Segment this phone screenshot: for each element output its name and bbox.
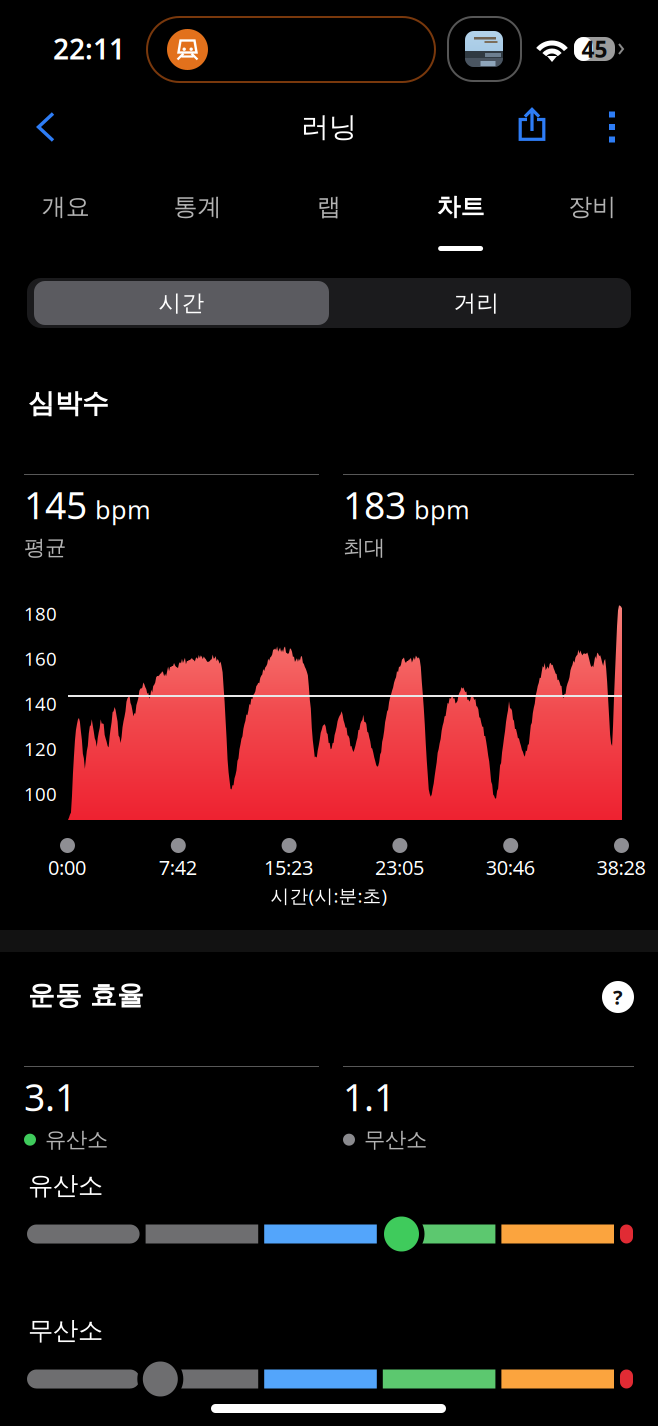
staticText: 45 — [581, 34, 607, 64]
staticText: 0:00 — [48, 854, 86, 881]
button[interactable]: Help — [591, 970, 645, 1024]
staticText: 통계 — [173, 192, 221, 221]
staticText: 심박수 — [28, 387, 109, 420]
button[interactable]: 개요 — [0, 166, 132, 258]
staticText: 7:42 — [159, 854, 197, 881]
staticText: 차트 — [437, 192, 485, 221]
staticText: 유산소 — [45, 1127, 108, 1153]
staticText: 22:11 — [53, 30, 125, 67]
staticText: 시간(시:분:초) — [270, 883, 387, 908]
staticText: 160 — [24, 646, 57, 671]
button[interactable]: Share — [497, 93, 567, 155]
staticText: 평균 — [24, 535, 66, 561]
staticText: 180 — [24, 601, 57, 626]
button[interactable]: 랩 — [263, 166, 395, 258]
staticText: 시간 — [158, 289, 204, 317]
staticText: 3.1 — [24, 1072, 76, 1122]
button[interactable]: 시간 — [34, 281, 329, 325]
staticText: 랩 — [317, 192, 341, 221]
staticText: 120 — [24, 736, 57, 761]
staticText: 30:46 — [486, 854, 535, 881]
staticText: 183 — [343, 480, 406, 530]
staticText: bpm — [95, 493, 151, 526]
staticText: 유산소 — [28, 1170, 103, 1201]
staticText: 23:05 — [375, 854, 424, 881]
staticText: bpm — [414, 493, 470, 526]
button[interactable]: 거리 — [329, 281, 624, 325]
staticText: 러닝 — [301, 110, 357, 144]
staticText: 145 — [24, 480, 87, 530]
staticText: 무산소 — [28, 1315, 103, 1346]
button[interactable]: More options — [583, 96, 641, 158]
staticText: 15:23 — [264, 854, 313, 881]
staticText: 1.1 — [343, 1072, 395, 1122]
staticText: 무산소 — [364, 1127, 427, 1153]
staticText: 장비 — [568, 192, 616, 221]
button[interactable]: 장비 — [526, 166, 658, 258]
staticText: 거리 — [453, 289, 499, 317]
staticText: ? — [613, 984, 623, 1010]
staticText: 최대 — [343, 535, 385, 561]
button[interactable]: 통계 — [132, 166, 263, 258]
button[interactable]: 차트 — [395, 166, 526, 258]
staticText: 140 — [24, 691, 57, 716]
button[interactable]: Back — [6, 96, 86, 158]
staticText: 100 — [24, 781, 57, 806]
staticText: 개요 — [42, 192, 90, 221]
staticText: 운동 효율 — [28, 979, 144, 1012]
staticText: 38:28 — [596, 854, 645, 881]
